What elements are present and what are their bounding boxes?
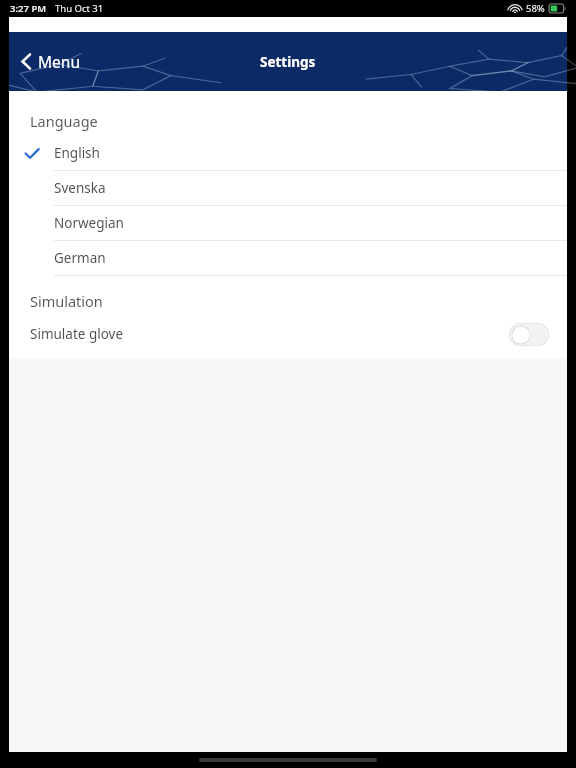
staticText: 3:27 PM [10, 2, 47, 15]
button[interactable]: German [9, 241, 567, 276]
staticText: Thu Oct 31 [55, 2, 104, 15]
staticText: German [54, 249, 106, 267]
staticText: 58% [526, 2, 545, 15]
staticText: English [54, 144, 100, 162]
button[interactable]: Simulate glove [9, 316, 567, 352]
staticText: Svenska [54, 179, 106, 197]
button[interactable]: Svenska [9, 171, 567, 206]
other: Simulate glove toggle [509, 323, 549, 346]
button[interactable]: Norwegian [9, 206, 567, 241]
staticText: Menu [38, 51, 80, 72]
button[interactable]: Menu [15, 45, 86, 78]
staticText: Language [30, 111, 98, 131]
staticText: Simulate glove [30, 325, 124, 343]
staticText: Simulation [30, 291, 103, 311]
staticText: Settings [260, 53, 316, 71]
staticText: Norwegian [54, 214, 124, 232]
button[interactable]: English [9, 136, 567, 171]
